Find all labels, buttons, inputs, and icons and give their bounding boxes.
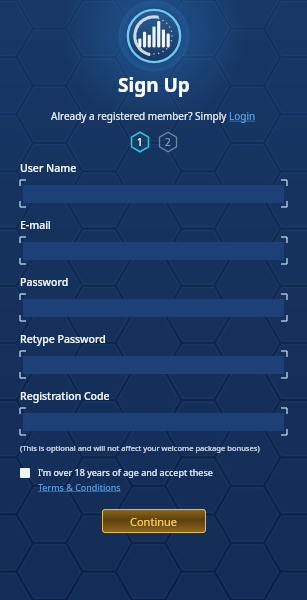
staticText: Sign Up [118,72,190,98]
staticText: Registration Code [20,389,110,403]
button[interactable]: Password [20,294,287,321]
staticText: Terms & Conditions [38,481,121,493]
staticText: I'm over 18 years of age and accept thes… [38,466,213,478]
staticText: (This is optional and will not affect yo… [20,443,260,453]
staticText: 1 [137,135,143,149]
button[interactable]: 2 [156,131,180,153]
staticText: Continue [130,514,178,529]
staticText: Retype Password [20,332,106,346]
button[interactable]: Registration Code [20,408,287,435]
button[interactable]: Terms & Conditions [38,481,121,493]
button[interactable]: E-mail [20,237,287,264]
button[interactable]: 1 [128,131,152,153]
button[interactable]: User Name [20,180,287,207]
staticText: E-mail [20,218,51,232]
staticText: Login [229,109,256,123]
button[interactable]: Continue [102,509,206,533]
button[interactable]: Retype Password [20,351,287,378]
button[interactable]: Login [229,109,256,123]
staticText: User Name [20,161,77,175]
staticText: Already a registered member? Simply [51,109,229,123]
staticText: 2 [165,135,171,149]
staticText: Password [20,275,69,289]
button[interactable]: I'm over 18 years of age and accept thes… [20,466,287,493]
